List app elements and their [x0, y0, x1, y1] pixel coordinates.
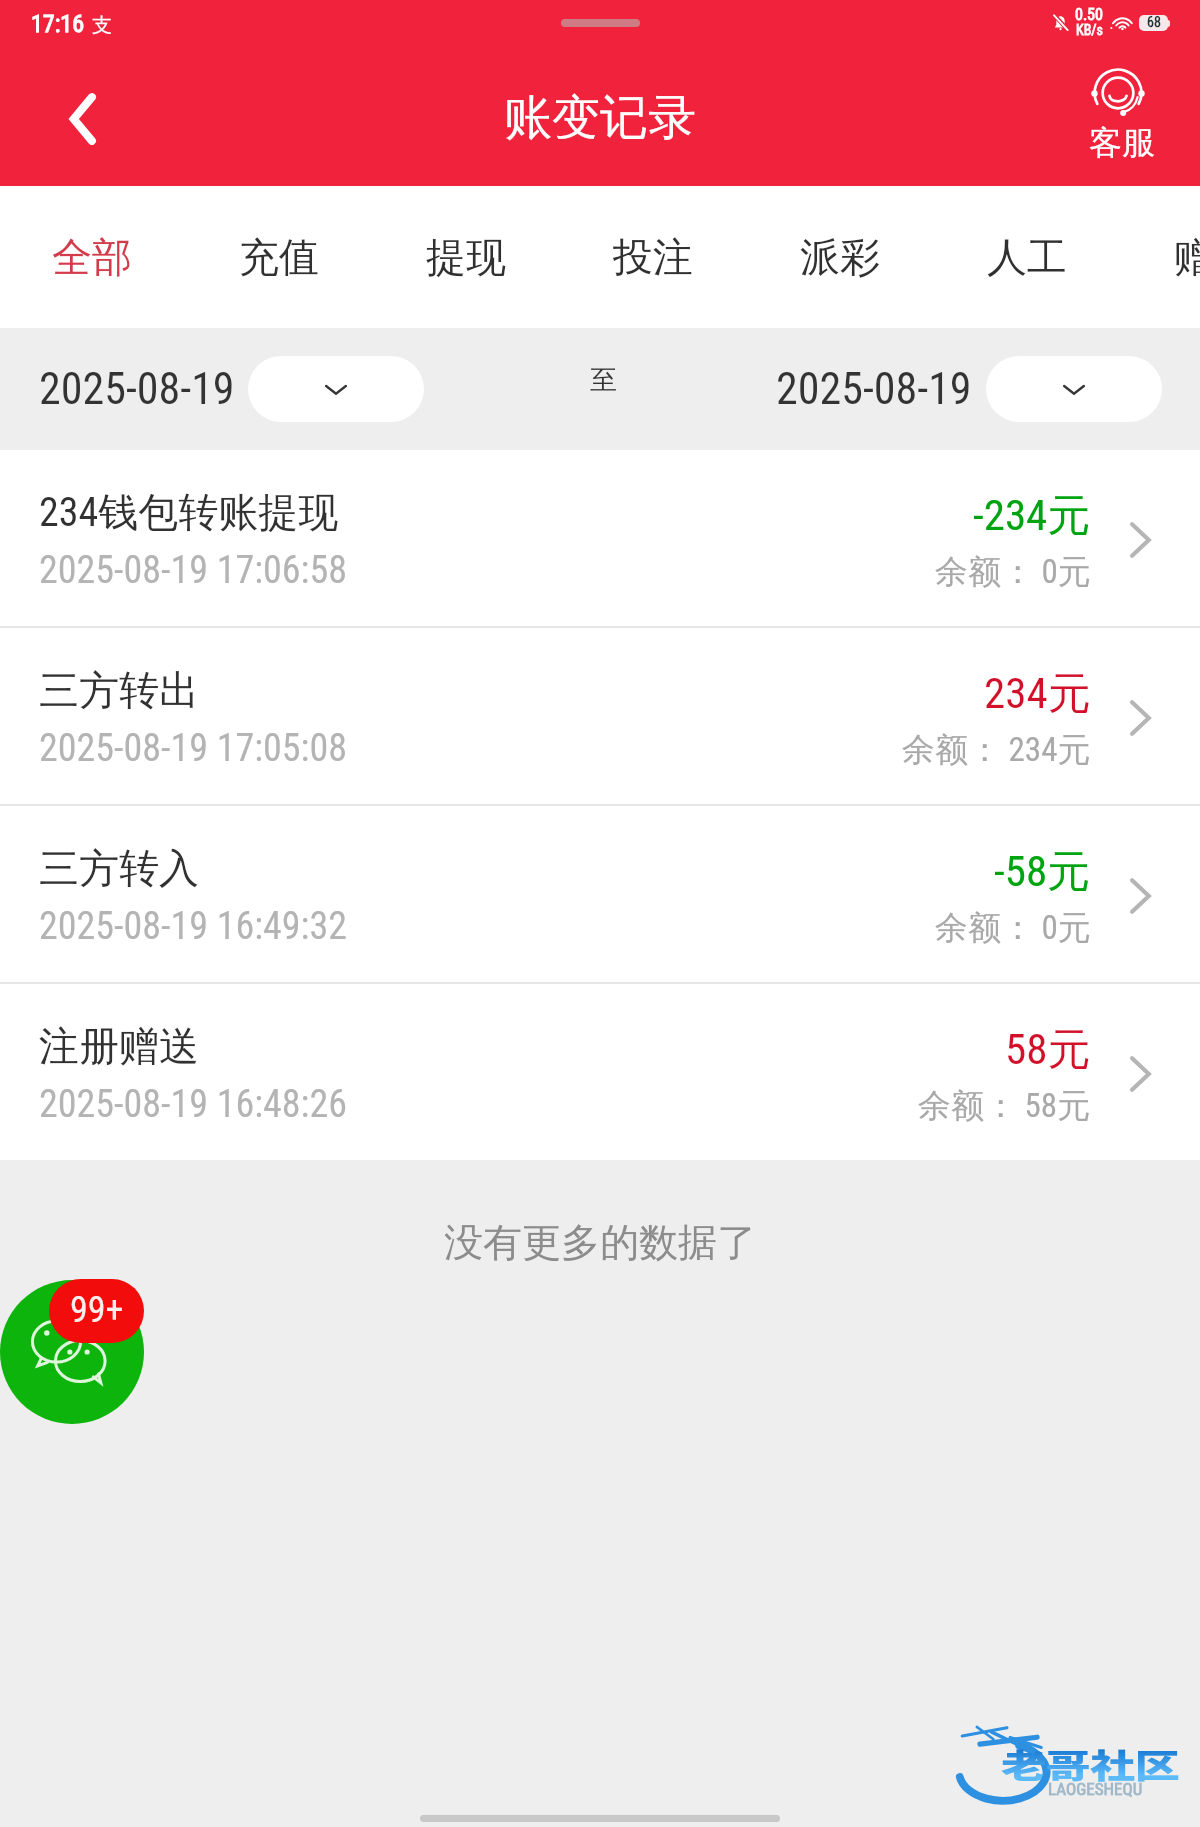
button[interactable]: 人工 — [934, 186, 1120, 328]
button[interactable]: WeChat customer service — [0, 1280, 144, 1424]
staticText: 注册赠送 — [39, 1021, 199, 1071]
staticText: 17:16 — [31, 10, 84, 38]
staticText: 派彩 — [800, 232, 880, 282]
staticText: 余额： 0元 — [935, 551, 1091, 593]
staticText: 2025-08-19 17:06:58 — [39, 548, 347, 593]
button[interactable]: 注册赠送 — [0, 984, 1200, 1160]
staticText: 0.50 — [1075, 5, 1103, 24]
staticText: 没有更多的数据了 — [444, 1218, 756, 1267]
staticText: LAOGESHEQU — [1048, 1779, 1143, 1799]
button[interactable]: Select start date — [248, 356, 424, 422]
staticText: -234元 — [973, 489, 1091, 543]
staticText: 2025-08-19 — [39, 363, 235, 415]
staticText: 投注 — [613, 232, 693, 282]
staticText: 客服 — [1089, 122, 1155, 164]
button[interactable]: Customer service — [1069, 57, 1171, 181]
staticText: 老哥社区 — [1001, 1740, 1180, 1788]
button[interactable]: 全部 — [0, 186, 185, 328]
staticText: 99+ — [70, 1289, 124, 1331]
button[interactable]: 投注 — [560, 186, 746, 328]
button[interactable]: 234钱包转账提现 — [0, 450, 1200, 626]
button[interactable]: 三方转出 — [0, 628, 1200, 804]
staticText: 234元 — [984, 667, 1091, 721]
staticText: 全部 — [52, 232, 132, 282]
button[interactable]: Back — [40, 78, 122, 160]
button[interactable]: Select end date — [986, 356, 1162, 422]
button[interactable]: 三方转入 — [0, 806, 1200, 982]
button[interactable]: 派彩 — [747, 186, 933, 328]
staticText: -58元 — [994, 845, 1091, 899]
staticText: 2025-08-19 16:48:26 — [39, 1082, 347, 1127]
staticText: 支 — [92, 13, 112, 38]
staticText: KB/s — [1076, 22, 1103, 38]
staticText: 三方转出 — [39, 665, 199, 715]
staticText: 234钱包转账提现 — [39, 487, 339, 537]
staticText: 2025-08-19 16:49:32 — [39, 904, 347, 949]
staticText: 充值 — [239, 232, 319, 282]
button[interactable]: 提现 — [373, 186, 559, 328]
staticText: 68 — [1147, 15, 1161, 30]
staticText: 赠送 — [1174, 232, 1200, 282]
staticText: 提现 — [426, 232, 506, 282]
staticText: 人工 — [987, 232, 1067, 282]
staticText: 至 — [590, 363, 617, 397]
button[interactable]: 99 plus unread messages — [49, 1279, 144, 1343]
staticText: 2025-08-19 17:05:08 — [39, 726, 347, 771]
staticText: 2025-08-19 — [776, 363, 972, 415]
button[interactable]: 赠送 — [1121, 186, 1200, 328]
staticText: 三方转入 — [39, 843, 199, 893]
staticText: 账变记录 — [504, 88, 696, 148]
staticText: 余额： 234元 — [902, 729, 1091, 771]
staticText: 58元 — [1005, 1023, 1091, 1077]
staticText: 余额： 58元 — [918, 1085, 1091, 1127]
button[interactable]: 充值 — [186, 186, 372, 328]
staticText: 余额： 0元 — [935, 907, 1091, 949]
